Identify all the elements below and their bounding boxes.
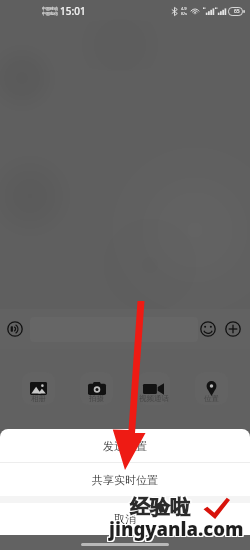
button[interactable]: 取消 — [0, 503, 250, 535]
staticText: 经验啦 — [130, 495, 190, 520]
button[interactable] — [30, 317, 198, 342]
button[interactable]: 相册 — [10, 349, 67, 429]
staticText: 经验啦 — [131, 496, 191, 521]
staticText: 经验啦 — [131, 495, 191, 520]
staticText: 经验啦 — [130, 494, 190, 519]
staticText: 经验啦 — [129, 494, 189, 519]
staticText: jingyanla.com — [109, 516, 244, 541]
staticText: jingyanla.com — [108, 515, 243, 540]
button[interactable]: 拍摄 — [68, 349, 125, 429]
staticText: jingyanla.com — [108, 517, 243, 542]
staticText: 15:01 — [60, 4, 86, 18]
staticText: 65 — [234, 8, 240, 15]
staticText: 视频通话 — [139, 394, 169, 403]
staticText: jingyanla.com — [110, 516, 245, 541]
button[interactable]: More functions — [221, 317, 245, 341]
button[interactable]: 位置 — [183, 349, 240, 429]
staticText: 取消 — [114, 512, 136, 526]
staticText: jingyanla.com — [109, 517, 244, 542]
staticText: 位置 — [204, 394, 219, 403]
button[interactable]: Voice input — [3, 317, 27, 341]
button[interactable]: Emoji — [196, 317, 220, 341]
staticText: 中国电信 — [42, 11, 58, 16]
staticText: 经验啦 — [129, 495, 189, 520]
staticText: 经验啦 — [130, 496, 190, 521]
staticText: jingyanla.com — [110, 517, 245, 542]
staticText: 经验啦 — [131, 494, 191, 519]
staticText: K/s — [181, 11, 187, 16]
staticText: 4.9 — [181, 6, 187, 11]
staticText: 发送位置 — [103, 439, 147, 453]
staticText: 中国移动 — [42, 6, 58, 11]
staticText: 共享实时位置 — [92, 473, 158, 487]
button[interactable]: 视频通话 — [125, 349, 182, 429]
button[interactable]: 共享实时位置 — [0, 463, 250, 496]
staticText: jingyanla.com — [108, 516, 243, 541]
button[interactable]: 发送位置 — [0, 429, 250, 462]
staticText: 相册 — [31, 394, 46, 403]
staticText: 经验啦 — [129, 496, 189, 521]
staticText: jingyanla.com — [109, 515, 244, 540]
staticText: 拍摄 — [89, 394, 104, 403]
staticText: jingyanla.com — [110, 515, 245, 540]
